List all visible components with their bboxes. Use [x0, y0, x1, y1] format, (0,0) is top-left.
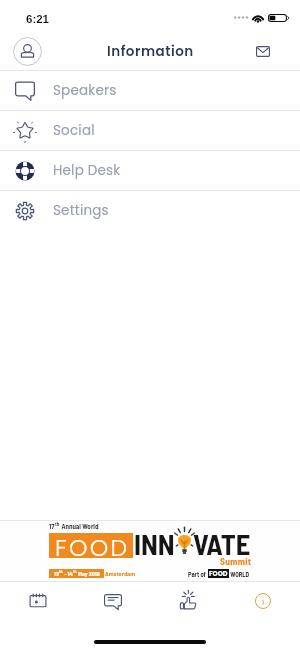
- staticText: VATE: [193, 526, 251, 560]
- staticText: Speakers: [53, 81, 117, 100]
- button[interactable]: Settings: [0, 190, 300, 230]
- staticText: WORLD: [229, 570, 250, 578]
- staticText: 17: [49, 522, 55, 530]
- staticText: 6:21: [26, 13, 50, 26]
- staticText: th: [55, 521, 60, 527]
- button[interactable]: Social: [0, 110, 300, 150]
- staticText: Help Desk: [53, 161, 121, 180]
- button[interactable]: Schedule: [14, 582, 62, 618]
- button[interactable]: Messages: [248, 37, 277, 66]
- staticText: - 14: [63, 570, 73, 577]
- staticText: INN: [134, 526, 175, 560]
- staticText: Information: [107, 42, 194, 61]
- button[interactable]: Profile: [13, 37, 42, 66]
- button[interactable]: Sponsors: [164, 582, 212, 618]
- button[interactable]: Information: [239, 582, 287, 618]
- staticText: Summit: [220, 555, 252, 566]
- staticText: FOOD: [209, 569, 228, 578]
- staticText: th: [73, 569, 77, 574]
- button[interactable]: Food Innovate Summit advertisement: [0, 521, 300, 582]
- button[interactable]: Speakers: [0, 70, 300, 110]
- button[interactable]: Chat: [89, 582, 137, 618]
- staticText: May 2019: [77, 570, 100, 577]
- staticText: Amsterdam: [105, 570, 136, 578]
- staticText: Annual World: [60, 522, 99, 530]
- staticText: 13: [54, 570, 59, 577]
- staticText: FOOD: [55, 531, 130, 556]
- button[interactable]: Help Desk: [0, 150, 300, 190]
- staticText: Settings: [53, 201, 109, 220]
- staticText: th: [59, 569, 63, 574]
- staticText: Social: [53, 121, 95, 140]
- staticText: Part of: [188, 570, 208, 578]
